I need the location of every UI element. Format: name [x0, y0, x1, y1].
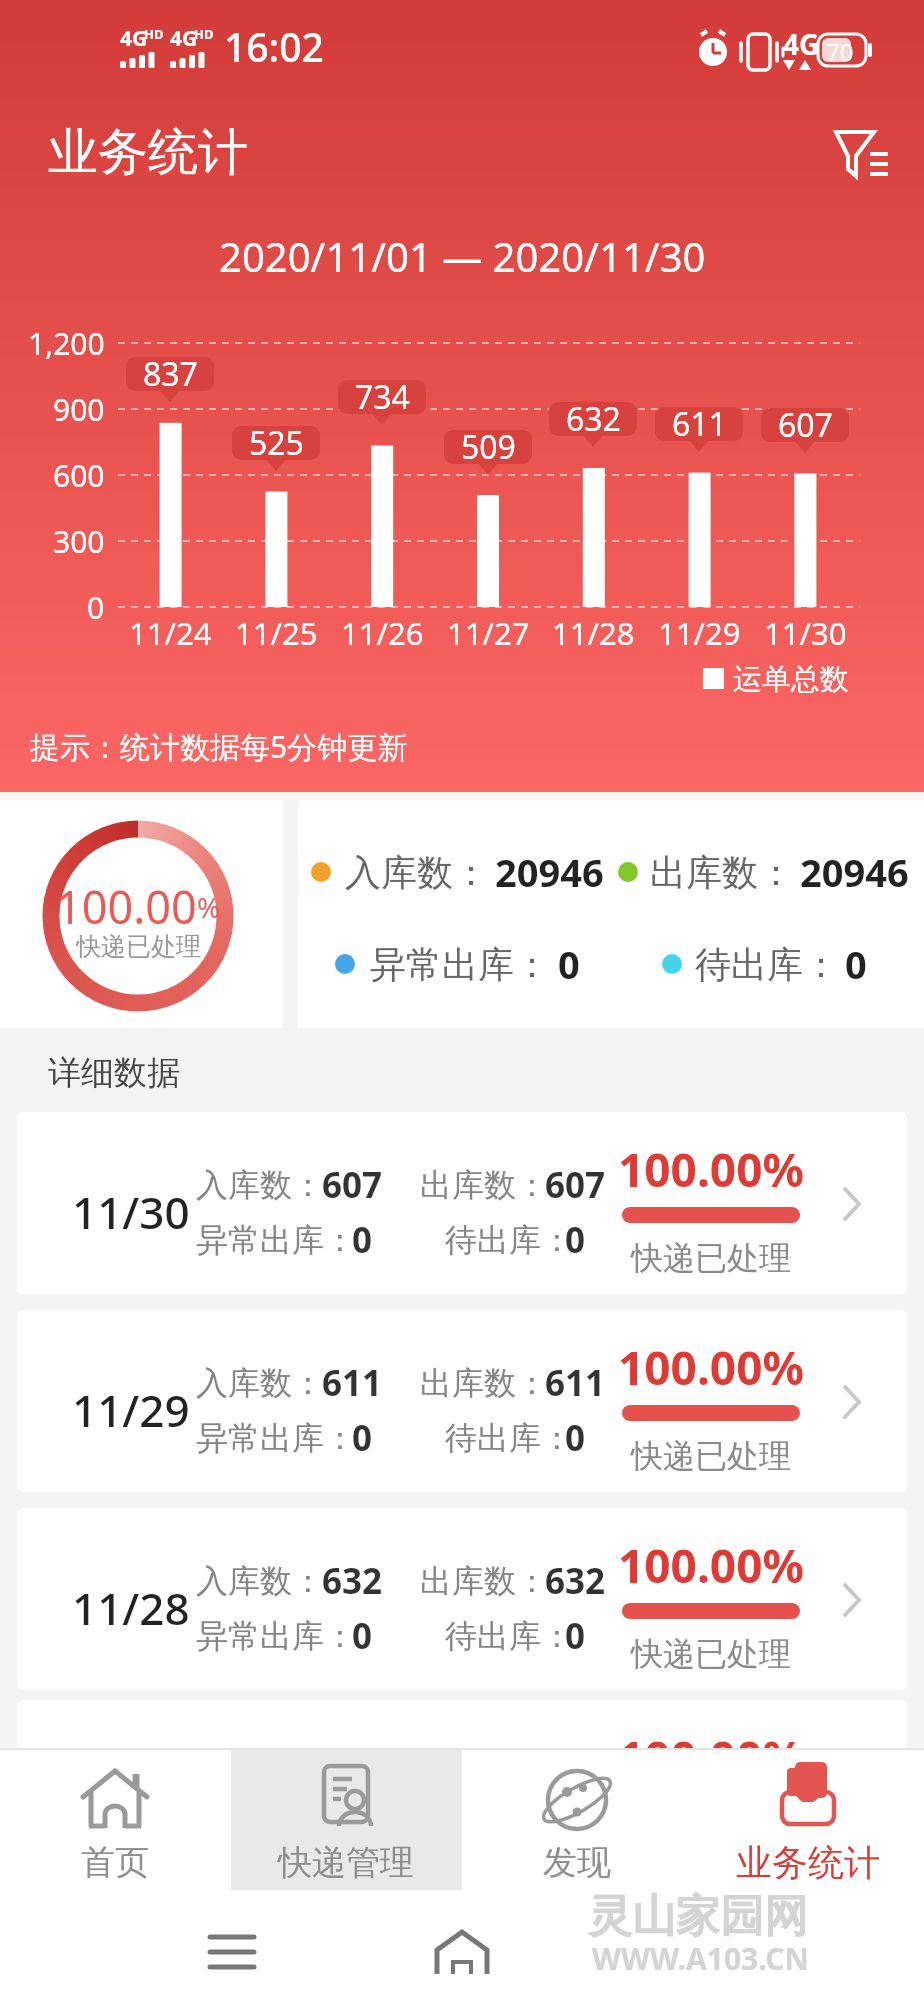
button[interactable]: [17, 1508, 907, 1690]
staticText: 出库数：: [420, 1561, 548, 1601]
staticText: 运单总数: [733, 661, 849, 698]
staticText: 入库数：: [196, 1363, 324, 1403]
staticText: 灵山家园网: [588, 1889, 808, 1944]
staticText: 异常出库：: [196, 1808, 356, 1848]
staticText: 11/25: [235, 612, 318, 654]
staticText: 837: [143, 352, 198, 396]
staticText: 632: [545, 1557, 606, 1605]
button[interactable]: [17, 1112, 907, 1294]
button[interactable]: [462, 1750, 693, 1890]
staticText: 异常出库：: [196, 1616, 356, 1656]
staticText: 600: [53, 455, 105, 496]
staticText: 100.00%: [618, 1534, 804, 1597]
staticText: 提示：统计数据每5分钟更新: [30, 726, 408, 767]
staticText: 0: [352, 1612, 373, 1660]
staticText: 0: [565, 1612, 586, 1660]
staticText: 0: [352, 1216, 373, 1264]
staticText: 异常出库：: [196, 1418, 356, 1458]
staticText: 待出库：: [445, 1616, 573, 1656]
staticText: 509: [322, 1749, 383, 1797]
staticText: 11/26: [341, 612, 424, 654]
button[interactable]: [17, 1310, 907, 1492]
staticText: 4G: [170, 24, 198, 53]
staticText: 快递已处理: [631, 1826, 791, 1866]
staticText: 发现: [543, 1841, 611, 1884]
staticText: 11/27: [72, 1770, 190, 1830]
staticText: 11/28: [72, 1578, 190, 1638]
staticText: 首页: [81, 1841, 149, 1884]
staticText: WWW.A103.CN: [592, 1938, 809, 1979]
staticText: 1,200: [28, 323, 105, 364]
staticText: 0: [352, 1414, 373, 1462]
staticText: 607: [778, 403, 833, 447]
staticText: 611: [545, 1359, 606, 1407]
staticText: 11/28: [552, 612, 635, 654]
staticText: 0: [565, 1216, 586, 1264]
staticText: 待出库：: [445, 1220, 573, 1260]
staticText: 0: [352, 1804, 373, 1852]
staticText: 0: [87, 587, 105, 628]
staticText: 快递管理: [278, 1841, 414, 1884]
staticText: 525: [249, 421, 304, 465]
staticText: 快递已处理: [631, 1634, 791, 1674]
staticText: 异常出库：: [370, 942, 550, 987]
staticText: 734: [355, 375, 410, 419]
staticText: 0: [565, 1414, 586, 1462]
staticText: 出库数：: [650, 850, 794, 895]
button[interactable]: [693, 1750, 924, 1890]
staticText: 入库数：: [196, 1561, 324, 1601]
staticText: HD: [194, 25, 214, 43]
staticText: 2020/11/01 — 2020/11/30: [219, 229, 706, 283]
staticText: 16:02: [224, 20, 324, 73]
staticText: 607: [545, 1161, 606, 1209]
staticText: 4G: [120, 24, 148, 53]
staticText: 4G: [783, 25, 820, 63]
staticText: 611: [322, 1359, 383, 1407]
button[interactable]: [828, 122, 894, 182]
staticText: 入库数：: [196, 1753, 324, 1793]
staticText: 11/30: [764, 612, 847, 654]
staticText: 0: [565, 1804, 586, 1852]
staticText: 0: [845, 938, 867, 990]
staticText: 待出库：: [695, 942, 839, 987]
staticText: 待出库：: [445, 1808, 573, 1848]
staticText: 0: [558, 938, 580, 990]
staticText: 业务统计: [736, 1840, 880, 1885]
staticText: 632: [566, 397, 621, 441]
staticText: 611: [672, 402, 727, 446]
staticText: 出库数：: [420, 1363, 548, 1403]
staticText: 100.00%: [618, 1138, 804, 1201]
staticText: 900: [53, 389, 105, 430]
staticText: 入库数：: [345, 850, 489, 895]
staticText: 入库数：: [196, 1165, 324, 1205]
staticText: 632: [322, 1557, 383, 1605]
staticText: %: [197, 888, 221, 926]
button[interactable]: [231, 1750, 462, 1890]
staticText: 11/30: [72, 1182, 190, 1242]
button[interactable]: [0, 1750, 231, 1890]
staticText: 20946: [495, 846, 604, 898]
staticText: 待出库：: [445, 1418, 573, 1458]
staticText: 业务统计: [48, 121, 248, 184]
staticText: 300: [53, 521, 105, 562]
staticText: 异常出库：: [196, 1220, 356, 1260]
staticText: 出库数：: [420, 1165, 548, 1205]
staticText: 70: [826, 35, 854, 68]
staticText: 出库数：: [420, 1753, 548, 1793]
staticText: 607: [322, 1161, 383, 1209]
staticText: 100.00: [56, 876, 197, 937]
staticText: 快递已处理: [631, 1436, 791, 1476]
staticText: 509: [545, 1749, 606, 1797]
staticText: 11/27: [447, 612, 530, 654]
staticText: 11/29: [72, 1380, 190, 1440]
button[interactable]: [17, 1700, 907, 1882]
staticText: 20946: [800, 846, 909, 898]
staticText: 详细数据: [48, 1052, 180, 1094]
staticText: 快递已处理: [631, 1238, 791, 1278]
staticText: 快递已处理: [76, 931, 201, 962]
staticText: 11/24: [129, 612, 212, 654]
staticText: 100.00%: [618, 1726, 804, 1789]
staticText: 11/29: [658, 612, 741, 654]
staticText: HD: [144, 25, 164, 43]
staticText: 100.00%: [618, 1336, 804, 1399]
